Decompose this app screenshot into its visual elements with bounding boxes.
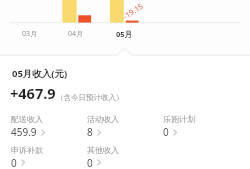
staticText: 配送收入 [11, 114, 43, 124]
other: Open 其他收入 details [97, 159, 101, 166]
staticText: 其他收入 [87, 145, 119, 155]
staticText: 活动收入 [87, 114, 119, 124]
staticText: 申诉补款 [11, 145, 43, 155]
button[interactable]: 活动收入 [87, 114, 163, 139]
staticText: 459.9 [11, 125, 37, 139]
staticText: 0 [87, 156, 93, 169]
button[interactable]: 申诉补款 [11, 145, 87, 169]
button[interactable]: 配送收入 [11, 114, 87, 139]
other: Open 申诉补款 details [21, 159, 25, 166]
button[interactable]: 05月 [116, 29, 133, 39]
staticText: -19.15 [121, 1, 145, 21]
staticText: 乐跑计划 [163, 114, 195, 124]
staticText: 0 [163, 125, 169, 139]
other: Open 乐跑计划 details [173, 129, 177, 136]
button[interactable]: 04月 [68, 29, 84, 39]
staticText: （含今日预计收入） [56, 93, 124, 102]
other: Open 活动收入 details [97, 129, 101, 136]
staticText: 05月收入(元) [12, 67, 68, 80]
button[interactable]: 乐跑计划 [163, 114, 239, 139]
staticText: 8 [87, 125, 93, 139]
staticText: +467.9 [10, 83, 56, 103]
button[interactable]: 其他收入 [87, 145, 163, 169]
staticText: 0 [11, 156, 17, 169]
other: Open 配送收入 details [41, 129, 45, 136]
button[interactable]: 03月 [22, 29, 38, 39]
